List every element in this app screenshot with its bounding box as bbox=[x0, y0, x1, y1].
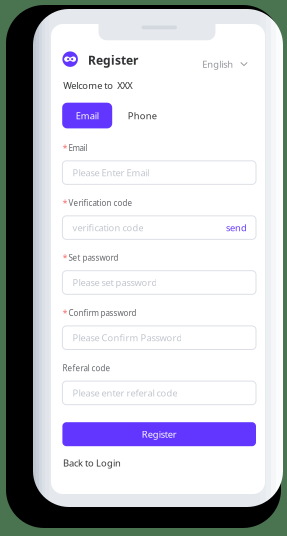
button[interactable]: Back to Login bbox=[60, 454, 124, 472]
button[interactable]: Phone bbox=[117, 103, 167, 128]
button[interactable]: Email bbox=[62, 103, 112, 128]
staticText: verification code bbox=[72, 221, 143, 234]
staticText: Email bbox=[68, 142, 87, 153]
staticText: * bbox=[62, 197, 67, 209]
staticText: Please Confirm Password bbox=[72, 331, 182, 344]
staticText: Phone bbox=[128, 109, 157, 122]
staticText: Email bbox=[76, 109, 99, 122]
staticText: Register bbox=[88, 52, 138, 68]
staticText: * bbox=[62, 142, 67, 154]
staticText: Please set password bbox=[72, 276, 157, 289]
staticText: Please enter referal code bbox=[72, 387, 177, 399]
button[interactable]: English bbox=[198, 54, 252, 74]
staticText: Welcome to XXX bbox=[63, 79, 132, 92]
staticText: Please Enter Email bbox=[72, 166, 149, 179]
staticText: Set password bbox=[68, 252, 118, 263]
staticText: English bbox=[202, 58, 233, 70]
staticText: Back to Login bbox=[63, 457, 121, 469]
staticText: Referal code bbox=[62, 363, 110, 373]
staticText: * bbox=[62, 251, 67, 264]
button[interactable]: Register bbox=[62, 422, 256, 446]
staticText: Register bbox=[142, 428, 177, 440]
staticText: Confirm password bbox=[68, 308, 136, 318]
staticText: send bbox=[226, 221, 247, 234]
staticText: * bbox=[62, 307, 67, 319]
staticText: Verification code bbox=[68, 197, 132, 208]
